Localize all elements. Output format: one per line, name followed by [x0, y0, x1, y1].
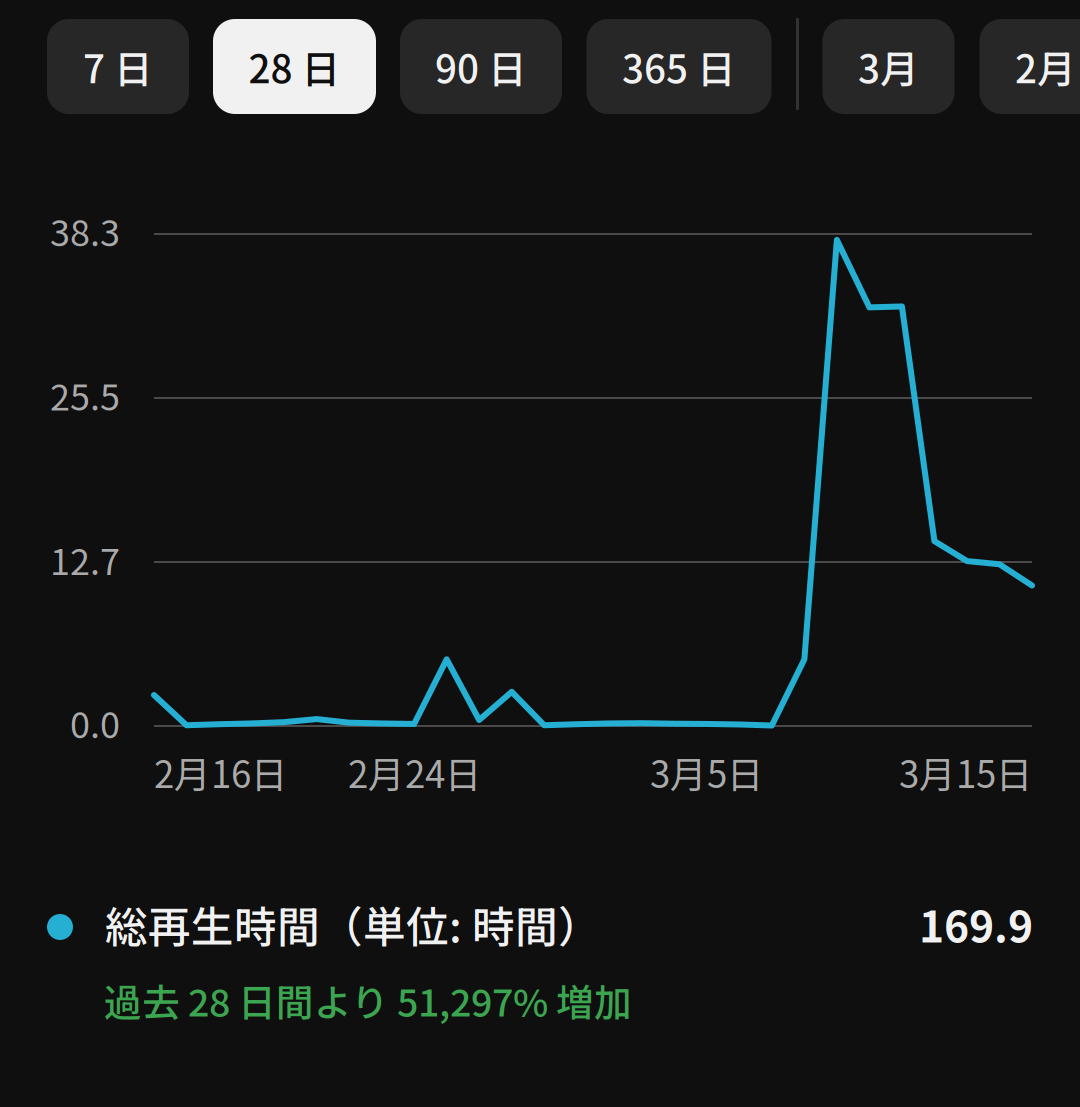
staticText: 0.0: [70, 696, 120, 748]
staticText: 3月15日: [899, 745, 1033, 799]
button[interactable]: 365 日: [586, 19, 771, 114]
staticText: 過去 28 日間より 51,297% 増加: [104, 973, 632, 1027]
staticText: 7 日: [83, 38, 153, 94]
staticText: 90 日: [435, 38, 527, 94]
staticText: 総再生時間（単位: 時間）: [105, 893, 601, 955]
staticText: 28 日: [248, 38, 340, 94]
staticText: 2月: [1015, 38, 1076, 94]
staticText: 2月16日: [154, 745, 288, 799]
button[interactable]: 2月: [979, 19, 1080, 114]
button[interactable]: 90 日: [400, 19, 562, 114]
button[interactable]: 7 日: [47, 19, 189, 114]
button[interactable]: 28 日: [213, 19, 376, 114]
button[interactable]: 3月: [822, 19, 954, 114]
staticText: 38.3: [50, 204, 120, 256]
staticText: 3月5日: [650, 745, 764, 799]
staticText: 365 日: [622, 38, 736, 94]
staticText: 2月24日: [348, 745, 482, 799]
staticText: 12.7: [50, 533, 120, 585]
staticText: 169.9: [919, 893, 1033, 955]
staticText: 25.5: [50, 369, 120, 421]
staticText: 3月: [858, 38, 919, 94]
